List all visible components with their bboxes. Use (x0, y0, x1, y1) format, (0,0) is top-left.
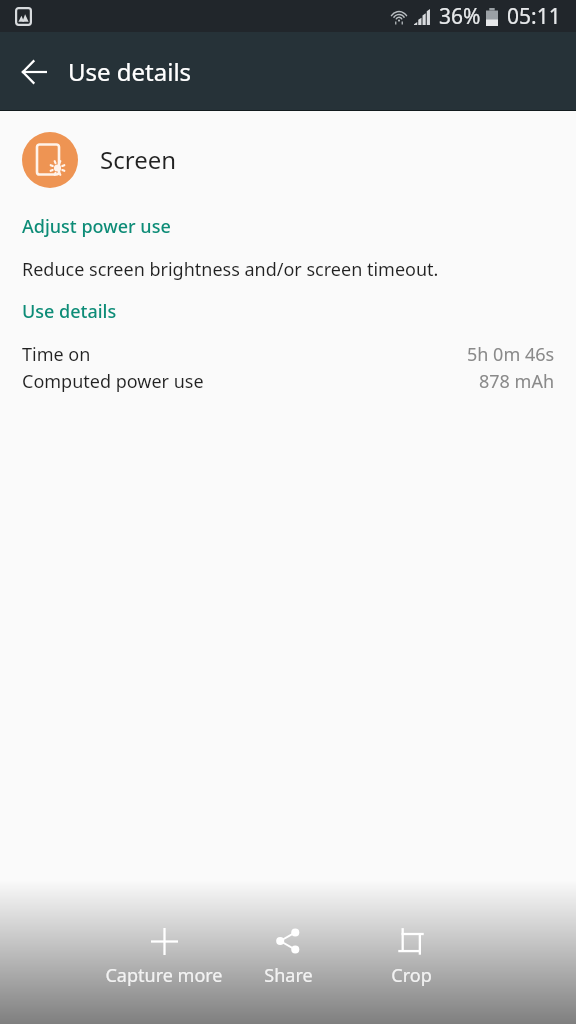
button[interactable]: Computed power use (0, 369, 576, 394)
button[interactable]: Screen (0, 132, 576, 188)
staticText: 36% (439, 2, 481, 31)
staticText: 5h 0m 46s (467, 342, 555, 367)
staticText: 878 mAh (479, 369, 555, 394)
staticText: 05:11 (507, 2, 561, 31)
staticText: Adjust power use (22, 214, 171, 239)
staticText: Use details (68, 55, 192, 88)
button[interactable]: Capture more (104, 925, 224, 988)
button[interactable]: Back (6, 44, 62, 100)
staticText: Crop (391, 963, 432, 988)
button[interactable]: Time on (0, 342, 576, 367)
staticText: Share (264, 963, 313, 988)
button[interactable]: Crop (351, 925, 471, 988)
staticText: Reduce screen brightness and/or screen t… (22, 257, 439, 282)
staticText: Capture more (105, 963, 223, 988)
staticText: Screen (100, 143, 177, 176)
button[interactable]: Share (228, 925, 348, 988)
staticText: Computed power use (22, 369, 204, 394)
button[interactable]: Adjust power use (0, 208, 576, 290)
staticText: Time on (22, 342, 91, 367)
staticText: Use details (22, 299, 117, 324)
